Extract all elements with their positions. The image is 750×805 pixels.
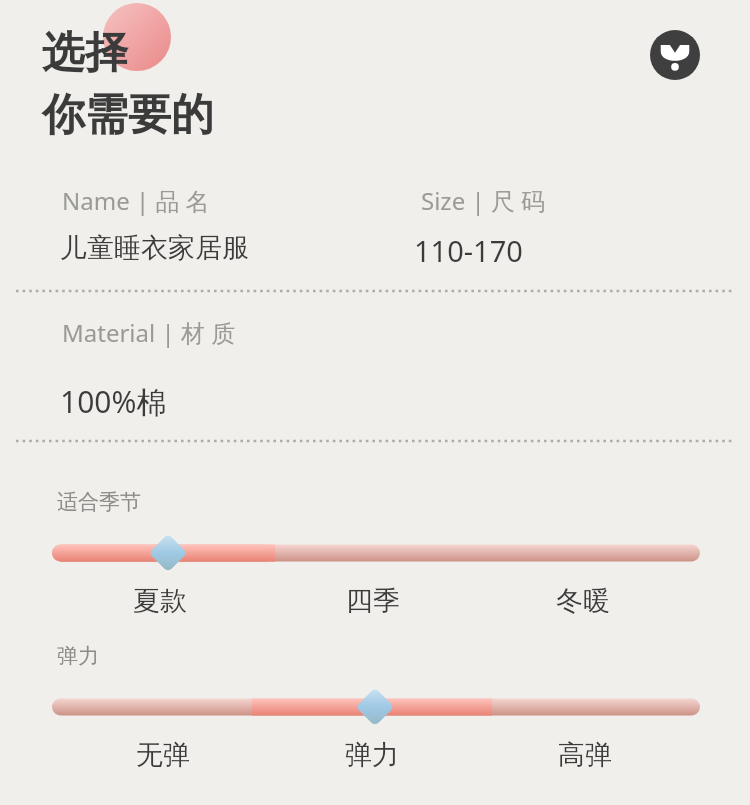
button[interactable]: Material | 材 质 [62, 316, 236, 349]
button[interactable]: 无弹 [103, 738, 223, 778]
button[interactable]: Name | 品 名 [62, 184, 210, 217]
staticText: 夏款 [100, 584, 220, 624]
button[interactable]: 夏款 [100, 584, 220, 624]
staticText: 适合季节 [57, 489, 141, 515]
staticText: 110-170 [414, 231, 523, 270]
button[interactable]: Brand logo [650, 30, 700, 80]
staticText: 你需要的 [42, 88, 214, 142]
staticText: 选择 [42, 26, 128, 80]
button[interactable] [0, 0, 750, 805]
staticText: 100%棉 [60, 381, 167, 422]
button[interactable]: 四季 [313, 584, 433, 624]
button[interactable]: Size | 尺 码 [421, 184, 546, 217]
staticText: Name | 品 名 [62, 184, 210, 217]
button[interactable]: 冬暖 [523, 584, 643, 624]
staticText: 冬暖 [523, 584, 643, 624]
staticText: 无弹 [103, 738, 223, 778]
staticText: 弹力 [312, 738, 432, 778]
staticText: Material | 材 质 [62, 316, 236, 349]
button[interactable]: 弹力 [312, 738, 432, 778]
staticText: 四季 [313, 584, 433, 624]
staticText: 弹力 [57, 643, 99, 669]
staticText: 儿童睡衣家居服 [60, 231, 249, 265]
staticText: 高弹 [525, 738, 645, 778]
button[interactable] [0, 0, 750, 805]
staticText: Size | 尺 码 [421, 184, 546, 217]
button[interactable]: 高弹 [525, 738, 645, 778]
